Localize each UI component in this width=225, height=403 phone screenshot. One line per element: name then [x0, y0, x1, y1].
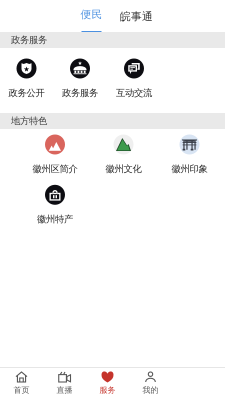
staticText: 政务服务: [11, 34, 47, 46]
staticText: 互动交流: [116, 87, 152, 98]
button[interactable]: 直播: [43, 371, 86, 395]
staticText: 徽州特产: [37, 213, 73, 225]
button[interactable]: 互动交流: [107, 58, 160, 98]
staticText: 徽州区简介: [32, 163, 77, 174]
staticText: 皖事通: [120, 10, 153, 23]
staticText: 便民: [80, 8, 102, 21]
button[interactable]: 便民: [76, 0, 106, 34]
staticText: 服务: [99, 385, 115, 395]
button[interactable]: 政务公开: [0, 58, 53, 98]
staticText: 政务公开: [8, 87, 44, 98]
staticText: 地方特色: [11, 115, 47, 127]
button[interactable]: 徽州文化: [90, 134, 157, 174]
staticText: 首页: [13, 385, 29, 395]
button[interactable]: 徽州特产: [21, 185, 88, 225]
button[interactable]: 皖事通: [118, 9, 154, 23]
staticText: 徽州印象: [171, 163, 207, 174]
button[interactable]: 我的: [129, 371, 172, 395]
staticText: 直播: [56, 385, 72, 395]
staticText: 我的: [142, 385, 158, 395]
button[interactable]: 徽州区简介: [21, 134, 88, 174]
staticText: 政务服务: [62, 87, 98, 98]
button[interactable]: 政务服务: [53, 58, 106, 98]
button[interactable]: 徽州印象: [156, 134, 223, 174]
button[interactable]: 服务: [86, 371, 129, 395]
staticText: 徽州文化: [105, 163, 141, 174]
button[interactable]: 首页: [0, 371, 43, 395]
